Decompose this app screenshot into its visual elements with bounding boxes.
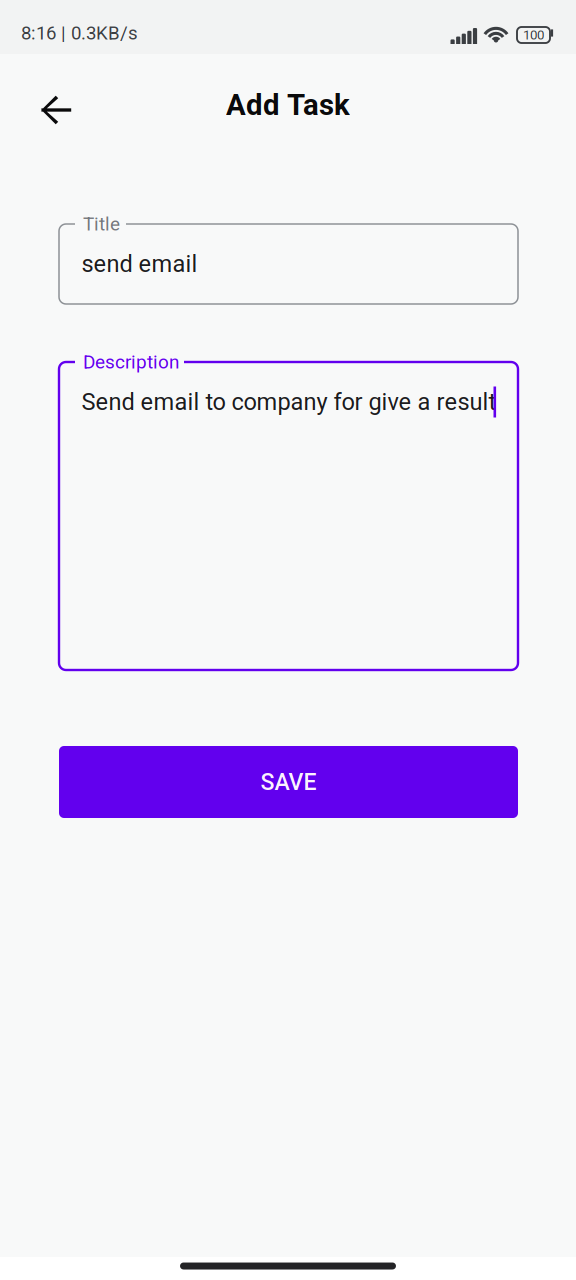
staticText: Send email to company for give a result	[81, 388, 496, 416]
button[interactable]: Back	[28, 77, 84, 133]
staticText: Title	[83, 213, 120, 235]
staticText: Description	[83, 351, 179, 373]
staticText: Add Task	[226, 88, 350, 122]
staticText: send email	[81, 250, 197, 278]
staticText: 100	[523, 27, 544, 43]
staticText: 8:16 | 0.3KB/s	[21, 22, 138, 44]
button[interactable]: SAVE	[59, 746, 518, 818]
staticText: SAVE	[260, 768, 316, 795]
